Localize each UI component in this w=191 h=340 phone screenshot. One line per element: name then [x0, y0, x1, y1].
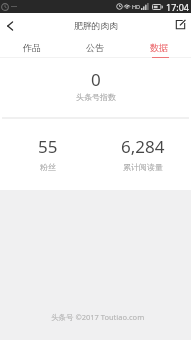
staticText: 0 — [91, 68, 101, 91]
staticText: 累计阅读量 — [123, 162, 163, 172]
button[interactable]: Back — [0, 13, 20, 35]
staticText: HD — [132, 3, 141, 10]
staticText: 头条号 ©2017 Toutiao.com — [51, 312, 145, 322]
staticText: 数据 — [150, 42, 168, 53]
staticText: 55 — [38, 135, 58, 158]
button[interactable]: 数据 — [127, 35, 191, 58]
button[interactable]: 作品 — [0, 35, 63, 58]
staticText: 肥胖的肉肉 — [74, 21, 118, 32]
staticText: 粉丝 — [40, 162, 56, 172]
button[interactable]: 公告 — [63, 35, 127, 58]
staticText: 17:04 — [166, 1, 190, 13]
staticText: 头条号指数 — [76, 92, 116, 102]
staticText: 6,284 — [121, 135, 165, 158]
staticText: 公告 — [86, 42, 104, 53]
button[interactable]: Edit — [169, 13, 191, 35]
staticText: 作品 — [23, 42, 41, 53]
